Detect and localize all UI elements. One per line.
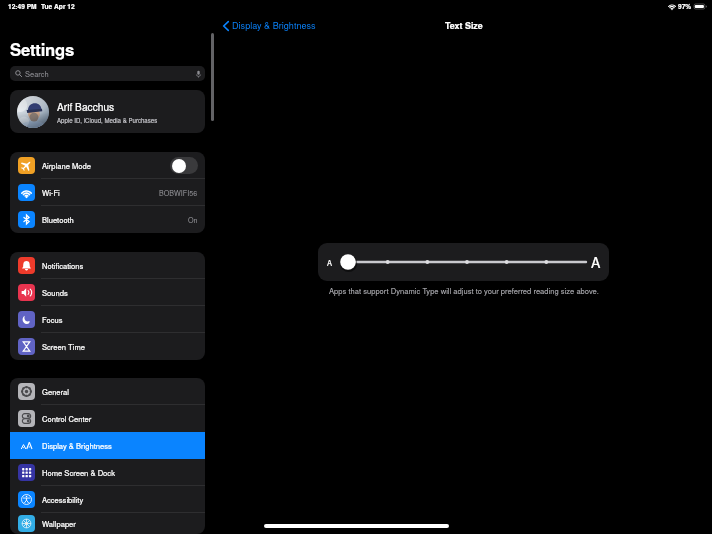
staticText: Settings [10, 37, 75, 61]
staticText: Tue Apr 12 [41, 2, 75, 11]
staticText: Control Center [42, 413, 92, 424]
staticText: Text Size [445, 19, 483, 32]
staticText: Focus [42, 314, 63, 325]
staticText: 12:49 PM [8, 2, 37, 11]
staticText: Accessibility [42, 494, 84, 505]
staticText: Display & Brightness [232, 19, 316, 32]
staticText: Apple ID, iCloud, Media & Purchases [57, 116, 158, 125]
staticText: A [327, 257, 333, 268]
button[interactable]: Display & Brightness [223, 19, 316, 32]
staticText: On [188, 215, 198, 225]
staticText: BOBWIFI56 [159, 188, 198, 198]
staticText: Search [25, 68, 49, 79]
staticText: Display & Brightness [42, 440, 112, 451]
staticText: Wi-Fi [42, 187, 60, 198]
staticText: Sounds [42, 287, 68, 298]
staticText: Apps that support Dynamic Type will adju… [329, 285, 599, 296]
button[interactable]: Control Center [10, 405, 205, 432]
button[interactable]: Focus [10, 306, 205, 333]
staticText: General [42, 386, 69, 397]
staticText: 97% [678, 2, 692, 11]
staticText: Airplane Mode [42, 160, 92, 171]
staticText: Arif Bacchus [57, 99, 115, 114]
staticText: Screen Time [42, 341, 85, 352]
staticText: Home Screen & Dock [42, 467, 115, 478]
button[interactable]: Search [10, 66, 205, 81]
button[interactable]: Screen Time [10, 333, 205, 360]
staticText: Notifications [42, 260, 84, 271]
button[interactable]: Text size slider [338, 251, 586, 273]
button[interactable]: Airplane Mode [10, 152, 205, 179]
button[interactable]: Wallpaper [10, 513, 205, 534]
button[interactable]: Home Screen & Dock [10, 459, 205, 486]
button[interactable]: Display & Brightness [10, 432, 205, 459]
button[interactable]: Accessibility [10, 486, 205, 513]
button[interactable]: Airplane Mode toggle [170, 157, 198, 174]
staticText: A [591, 252, 601, 272]
staticText: Bluetooth [42, 214, 74, 225]
button[interactable]: Arif Bacchus [10, 90, 205, 133]
button[interactable]: Wi-Fi [10, 179, 205, 206]
button[interactable]: Notifications [10, 252, 205, 279]
button[interactable]: General [10, 378, 205, 405]
staticText: Wallpaper [42, 518, 76, 529]
button[interactable]: Sounds [10, 279, 205, 306]
button[interactable]: Bluetooth [10, 206, 205, 233]
